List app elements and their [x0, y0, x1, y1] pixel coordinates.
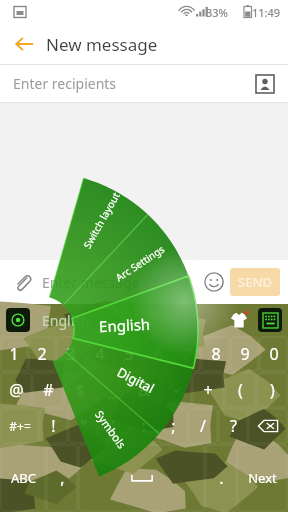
- button[interactable]: ": [69, 409, 97, 443]
- staticText: New message: [46, 33, 158, 56]
- button[interactable]: :: [129, 409, 157, 443]
- staticText: #: [43, 379, 54, 401]
- button[interactable]: Emoji: [198, 266, 230, 298]
- button[interactable]: 8: [202, 337, 229, 371]
- button[interactable]: 2: [29, 337, 55, 371]
- staticText: 6: [153, 343, 163, 365]
- button[interactable]: +: [193, 373, 223, 407]
- button[interactable]: !: [40, 409, 67, 443]
- button[interactable]: Keyboard settings: [258, 308, 282, 332]
- button[interactable]: Voice input: [6, 308, 30, 332]
- button[interactable]: [79, 445, 204, 511]
- staticText: SEND: [238, 273, 272, 291]
- staticText: /: [200, 415, 206, 437]
- staticText: 0: [269, 343, 279, 365]
- staticText: ABC: [11, 469, 36, 487]
- staticText: ": [80, 415, 87, 437]
- staticText: Enter message: [42, 273, 198, 292]
- button[interactable]: Enter recipients: [0, 65, 288, 102]
- staticText: 7: [182, 343, 192, 365]
- button[interactable]: 0: [260, 337, 287, 371]
- staticText: ): [270, 379, 275, 401]
- button[interactable]: 5: [115, 337, 142, 371]
- button[interactable]: 6: [144, 337, 171, 371]
- staticText: 8: [211, 343, 221, 365]
- staticText: ,: [60, 467, 65, 489]
- button[interactable]: .: [206, 445, 236, 511]
- button[interactable]: (: [225, 373, 255, 407]
- staticText: $: [75, 379, 85, 401]
- button[interactable]: -: [161, 373, 191, 407]
- staticText: .: [219, 467, 224, 489]
- button[interactable]: Add contact: [252, 71, 278, 97]
- staticText: 33%: [206, 5, 228, 20]
- button[interactable]: SEND: [230, 268, 280, 296]
- button[interactable]: English: [42, 311, 90, 330]
- staticText: #+=: [9, 418, 31, 434]
- button[interactable]: [249, 409, 287, 443]
- button[interactable]: ): [257, 373, 287, 407]
- staticText: 11:49: [252, 5, 281, 20]
- staticText: Symbols: [92, 407, 130, 452]
- button[interactable]: ?: [219, 409, 247, 443]
- staticText: ;: [171, 415, 176, 437]
- staticText: English: [98, 314, 151, 336]
- button[interactable]: Arc menu: [0, 0, 288, 512]
- button[interactable]: &: [129, 373, 159, 407]
- button[interactable]: Back: [8, 28, 40, 60]
- button[interactable]: Themes: [226, 307, 252, 333]
- staticText: 1: [9, 343, 19, 365]
- button[interactable]: @: [1, 373, 31, 407]
- staticText: :: [141, 415, 146, 437]
- staticText: 2: [37, 343, 47, 365]
- staticText: _: [108, 379, 116, 401]
- button[interactable]: /: [189, 409, 217, 443]
- staticText: 9: [240, 343, 250, 365]
- staticText: Arc Settings: [113, 242, 167, 284]
- button[interactable]: ': [99, 409, 127, 443]
- button[interactable]: 7: [173, 337, 200, 371]
- button[interactable]: $: [65, 373, 95, 407]
- button[interactable]: 4: [86, 337, 113, 371]
- staticText: 5: [124, 343, 134, 365]
- button[interactable]: Next: [238, 445, 287, 511]
- staticText: &: [138, 379, 150, 401]
- button[interactable]: #: [33, 373, 63, 407]
- staticText: -: [173, 379, 179, 401]
- button[interactable]: 9: [231, 337, 258, 371]
- staticText: !: [51, 415, 56, 437]
- staticText: 4: [95, 343, 105, 365]
- staticText: 3: [66, 343, 76, 365]
- button[interactable]: 3: [57, 337, 84, 371]
- staticText: Next: [248, 469, 277, 487]
- button[interactable]: Attach: [6, 266, 38, 298]
- button[interactable]: _: [97, 373, 127, 407]
- button[interactable]: 1: [1, 337, 27, 371]
- staticText: Enter recipients: [13, 74, 252, 93]
- staticText: ?: [230, 415, 237, 437]
- staticText: Digital: [114, 363, 158, 397]
- button[interactable]: #+=: [1, 409, 38, 443]
- staticText: +: [203, 379, 213, 401]
- staticText: (: [238, 379, 243, 401]
- staticText: ': [111, 415, 115, 437]
- button[interactable]: ABC: [1, 445, 45, 511]
- button[interactable]: ,: [47, 445, 77, 511]
- button[interactable]: ;: [159, 409, 187, 443]
- staticText: Switch layout: [80, 189, 123, 251]
- staticText: @: [9, 379, 24, 401]
